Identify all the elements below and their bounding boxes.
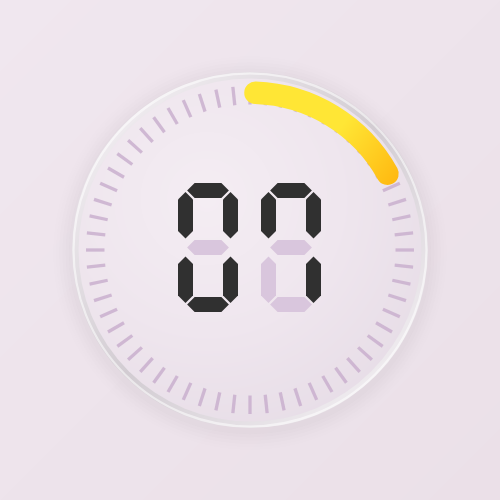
button[interactable]: Timer <box>0 0 500 500</box>
